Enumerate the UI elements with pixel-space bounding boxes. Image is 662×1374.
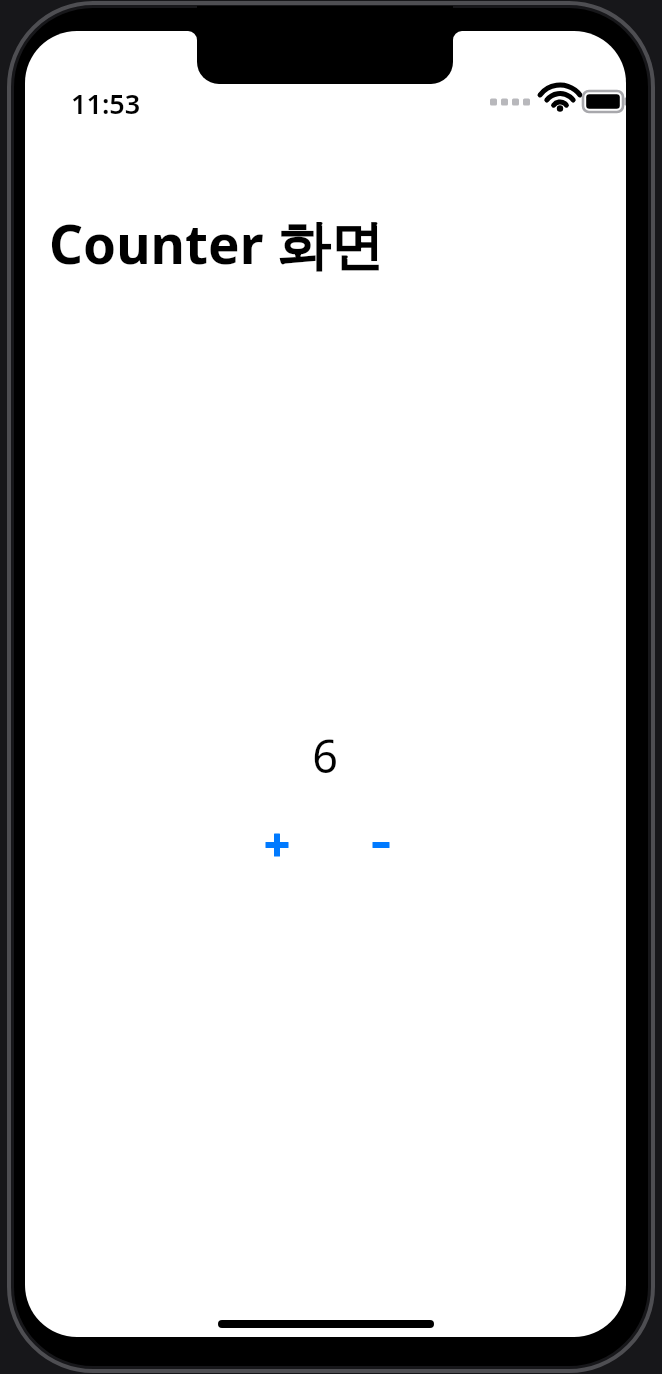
- button[interactable]: Decrement: [329, 809, 433, 881]
- button[interactable]: Increment: [225, 809, 329, 881]
- staticText: Counter 화면: [49, 207, 384, 279]
- staticText: 11:53: [71, 85, 141, 122]
- staticText: 6: [275, 725, 375, 786]
